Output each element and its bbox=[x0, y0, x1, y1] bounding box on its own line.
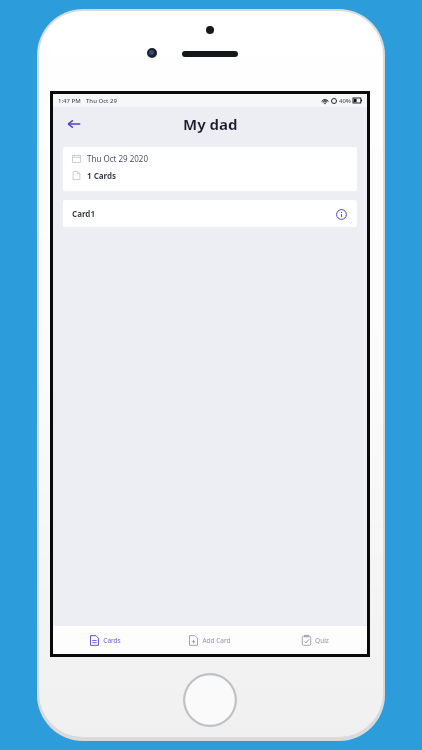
button[interactable]: Thu Oct 29 2020 bbox=[63, 147, 357, 191]
button[interactable]: Quiz bbox=[262, 626, 367, 654]
staticText: Thu Oct 29 bbox=[86, 97, 117, 105]
button[interactable]: Card1 bbox=[63, 200, 357, 227]
staticText: 40% bbox=[339, 97, 351, 105]
staticText: Thu Oct 29 2020 bbox=[87, 153, 149, 164]
button[interactable]: Card info bbox=[334, 207, 348, 221]
staticText: Add Card bbox=[202, 636, 231, 645]
staticText: Quiz bbox=[315, 636, 329, 645]
staticText: 1 Cards bbox=[87, 170, 117, 181]
staticText: Cards bbox=[103, 636, 121, 645]
button[interactable]: Back bbox=[63, 113, 85, 135]
button[interactable]: Cards bbox=[53, 626, 157, 654]
staticText: My dad bbox=[183, 114, 238, 134]
staticText: Card1 bbox=[72, 208, 95, 219]
button[interactable]: Add Card bbox=[157, 626, 262, 654]
staticText: 1:47 PM bbox=[58, 97, 81, 105]
